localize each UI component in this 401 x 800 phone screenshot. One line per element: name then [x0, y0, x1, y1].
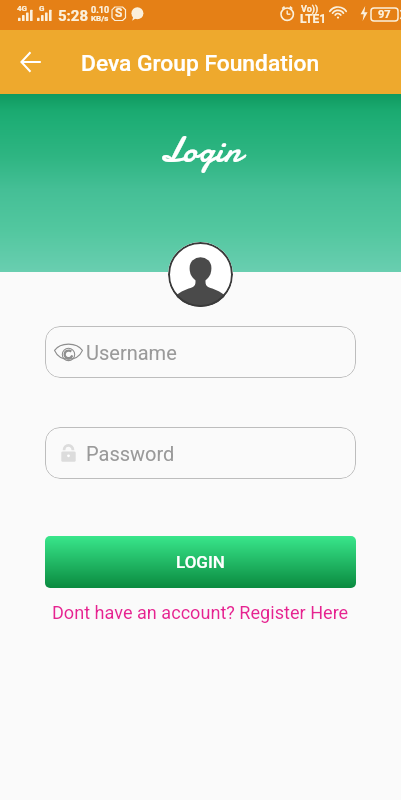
staticText: Vo)) — [301, 4, 319, 15]
button[interactable]: Back — [9, 40, 53, 84]
button[interactable]: Dont have an account? Register Here — [0, 598, 401, 626]
staticText: LTE1 — [300, 12, 327, 26]
staticText: 0.10 — [91, 5, 110, 16]
staticText: Deva Group Foundation — [81, 50, 320, 77]
staticText: Login — [0, 125, 401, 176]
staticText: 4G — [17, 4, 28, 13]
button[interactable]: LOGIN — [45, 536, 356, 588]
staticText: G — [39, 4, 45, 13]
staticText: Username — [86, 341, 177, 364]
button[interactable]: Username — [45, 326, 356, 378]
staticText: 5:28 — [58, 7, 89, 25]
staticText: KB/s — [91, 14, 109, 23]
staticText: Dont have an account? Register Here — [52, 602, 349, 623]
staticText: Password — [86, 442, 175, 465]
staticText: S — [115, 6, 123, 20]
staticText: 97 — [378, 8, 391, 21]
staticText: LOGIN — [176, 552, 225, 572]
button[interactable]: Password — [45, 427, 356, 479]
